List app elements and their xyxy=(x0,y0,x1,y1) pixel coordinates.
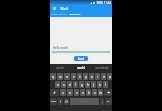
button[interactable]: y xyxy=(83,73,88,80)
button[interactable]: words xyxy=(50,64,70,72)
button[interactable]: s xyxy=(61,81,66,88)
staticText: RECEIVED LIST xyxy=(51,13,67,16)
button[interactable]: . xyxy=(100,98,104,105)
button[interactable]: Voice input xyxy=(58,98,63,105)
button[interactable]: w xyxy=(57,73,63,80)
staticText: NEW TEXT xyxy=(69,13,81,16)
button[interactable]: q xyxy=(50,73,56,80)
staticText: x xyxy=(69,91,71,95)
staticText: Mail xyxy=(60,6,68,11)
staticText: f xyxy=(75,83,76,87)
button[interactable]: z xyxy=(60,89,66,96)
staticText: . xyxy=(102,100,103,104)
staticText: k xyxy=(99,83,101,87)
staticText: n xyxy=(94,91,96,95)
staticText: t xyxy=(79,75,81,79)
button[interactable]: world xyxy=(70,64,91,72)
button[interactable]: b xyxy=(86,89,91,96)
staticText: 100% 11:44 xyxy=(96,1,111,5)
staticText: w xyxy=(59,75,62,79)
button[interactable]: f xyxy=(73,81,78,88)
staticText: u xyxy=(91,75,93,79)
button[interactable]: ?123 xyxy=(50,98,57,105)
staticText: world xyxy=(77,66,85,70)
button[interactable]: Enter xyxy=(105,98,112,105)
button[interactable]: c xyxy=(74,89,79,96)
staticText: c xyxy=(76,91,78,95)
button[interactable]: l xyxy=(103,81,108,88)
staticText: o xyxy=(103,75,105,79)
button[interactable]: a xyxy=(55,81,60,88)
button[interactable]: Backspace xyxy=(104,89,112,96)
button[interactable]: worldwide xyxy=(91,64,112,72)
button[interactable]: r xyxy=(71,73,76,80)
staticText: g xyxy=(81,83,83,87)
staticText: a xyxy=(57,83,59,87)
button[interactable]: Shift xyxy=(50,89,59,96)
button[interactable]: t xyxy=(77,73,82,80)
staticText: d xyxy=(69,83,71,87)
button[interactable]: i xyxy=(95,73,100,80)
staticText: j xyxy=(93,83,94,87)
button[interactable]: RECEIVED LIST xyxy=(50,11,67,17)
button[interactable]: d xyxy=(67,81,72,88)
staticText: l xyxy=(105,83,106,87)
staticText: h xyxy=(87,83,89,87)
button[interactable]: j xyxy=(91,81,96,88)
staticText: v xyxy=(82,91,84,95)
staticText: z xyxy=(62,91,64,95)
staticText: s xyxy=(63,83,65,87)
button[interactable]: h xyxy=(85,81,90,88)
staticText: b xyxy=(88,91,90,95)
button[interactable]: Emoji xyxy=(64,98,69,105)
button[interactable]: Send xyxy=(74,56,88,61)
staticText: p xyxy=(109,75,111,79)
button[interactable]: m xyxy=(98,89,103,96)
button[interactable]: x xyxy=(67,89,73,96)
staticText: y xyxy=(85,75,87,79)
button[interactable]: e xyxy=(64,73,70,80)
button[interactable]: o xyxy=(101,73,106,80)
staticText: e xyxy=(66,75,68,79)
staticText: Send xyxy=(78,57,84,60)
staticText: m xyxy=(99,91,102,95)
staticText: ?123 xyxy=(51,100,56,103)
staticText: worldwide xyxy=(95,66,109,70)
button[interactable]: g xyxy=(79,81,84,88)
staticText: q xyxy=(52,75,54,79)
button[interactable]: u xyxy=(89,73,94,80)
staticText: Hello world xyxy=(53,46,68,50)
staticText: r xyxy=(73,75,75,79)
button[interactable]: k xyxy=(97,81,102,88)
button[interactable]: v xyxy=(80,89,85,96)
staticText: English xyxy=(81,100,89,103)
button[interactable]: NEW TEXT xyxy=(67,11,83,17)
staticText: words xyxy=(56,66,64,70)
button[interactable]: English xyxy=(70,98,99,105)
button[interactable]: Open navigation menu xyxy=(52,6,56,10)
button[interactable]: p xyxy=(107,73,112,80)
button[interactable]: n xyxy=(92,89,97,96)
staticText: i xyxy=(97,75,98,79)
